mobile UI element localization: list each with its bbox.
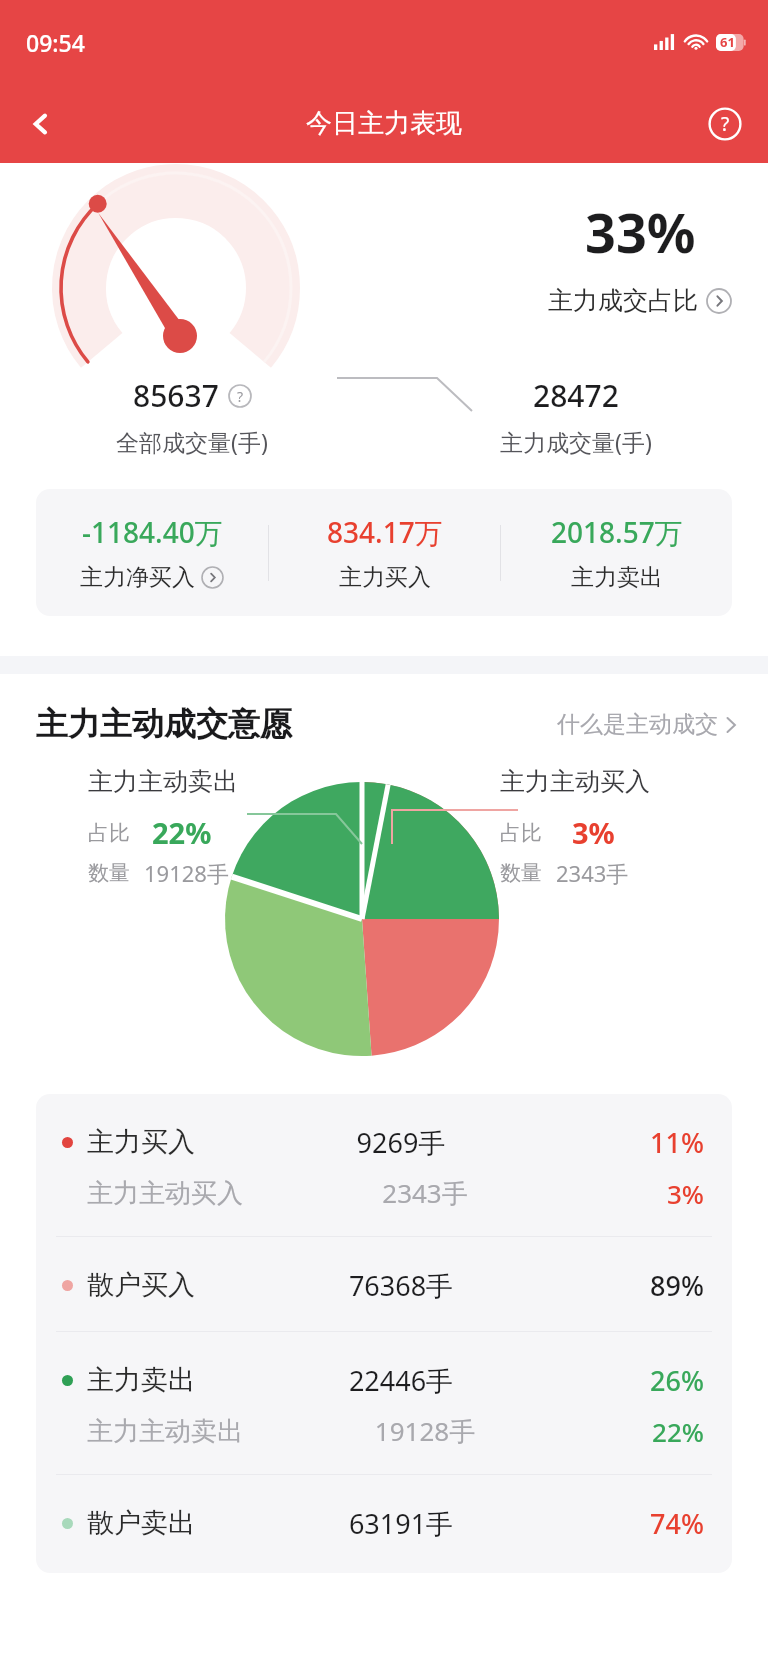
staticText: 2343手: [556, 858, 629, 888]
staticText: 3%: [572, 813, 615, 852]
staticText: 主力主动成交意愿: [36, 704, 292, 744]
staticText: 85637: [133, 375, 219, 416]
staticText: 占比: [500, 820, 542, 846]
button[interactable]: Back: [14, 97, 68, 151]
button[interactable]: Help: [698, 97, 752, 151]
staticText: 9269手: [286, 1124, 516, 1161]
button[interactable]: -1184.40万: [36, 513, 268, 592]
button[interactable]: 85637: [133, 375, 252, 416]
staticText: 61: [720, 33, 735, 51]
button[interactable]: 散户买入: [36, 1259, 732, 1311]
button[interactable]: 散户卖出: [36, 1497, 732, 1549]
staticText: 主力主动卖出: [88, 766, 238, 797]
button[interactable]: 主力主动买入: [36, 1168, 732, 1218]
staticText: 834.17万: [327, 513, 443, 551]
staticText: 散户卖出: [87, 1506, 195, 1540]
staticText: 主力主动卖出: [87, 1415, 243, 1448]
staticText: 63191手: [286, 1505, 516, 1542]
staticText: 33%: [585, 195, 696, 269]
staticText: 19128手: [144, 858, 229, 888]
button[interactable]: 主力卖出: [36, 1354, 732, 1406]
staticText: 2343手: [310, 1175, 540, 1211]
staticText: 89%: [608, 1267, 704, 1304]
staticText: 数量: [500, 860, 542, 886]
staticText: -1184.40万: [82, 513, 223, 551]
staticText: 主力净买入: [80, 563, 195, 592]
staticText: 全部成交量(手): [116, 426, 268, 457]
staticText: 28472: [533, 375, 619, 416]
staticText: 22%: [152, 813, 212, 852]
staticText: 主力买入: [87, 1125, 195, 1159]
staticText: 76368手: [286, 1267, 516, 1304]
staticText: 主力主动买入: [87, 1177, 243, 1210]
staticText: 22446手: [286, 1362, 516, 1399]
staticText: 今日主力表现: [306, 107, 462, 140]
staticText: 数量: [88, 860, 130, 886]
staticText: 主力成交量(手): [500, 426, 652, 457]
staticText: ?: [721, 111, 730, 137]
button[interactable]: 什么是主动成交: [557, 710, 738, 739]
button[interactable]: 主力主动卖出: [36, 1406, 732, 1456]
staticText: 什么是主动成交: [557, 710, 718, 739]
button[interactable]: 主力成交占比: [548, 285, 732, 316]
staticText: 26%: [608, 1362, 704, 1399]
other: 说明: [228, 384, 252, 408]
staticText: 占比: [88, 820, 130, 846]
staticText: 主力买入: [339, 563, 431, 592]
button[interactable]: 主力买入: [36, 1116, 732, 1168]
staticText: 22%: [608, 1414, 704, 1449]
staticText: 11%: [608, 1124, 704, 1161]
staticText: 主力卖出: [87, 1363, 195, 1397]
staticText: 74%: [608, 1505, 704, 1542]
staticText: 主力主动买入: [500, 766, 650, 797]
staticText: 3%: [608, 1176, 704, 1211]
staticText: 19128手: [310, 1413, 540, 1449]
staticText: 09:54: [26, 27, 85, 58]
staticText: 散户买入: [87, 1268, 195, 1302]
staticText: 主力成交占比: [548, 285, 698, 316]
staticText: 主力卖出: [571, 563, 663, 592]
staticText: 2018.57万: [551, 513, 683, 551]
staticText: ?: [237, 387, 244, 406]
